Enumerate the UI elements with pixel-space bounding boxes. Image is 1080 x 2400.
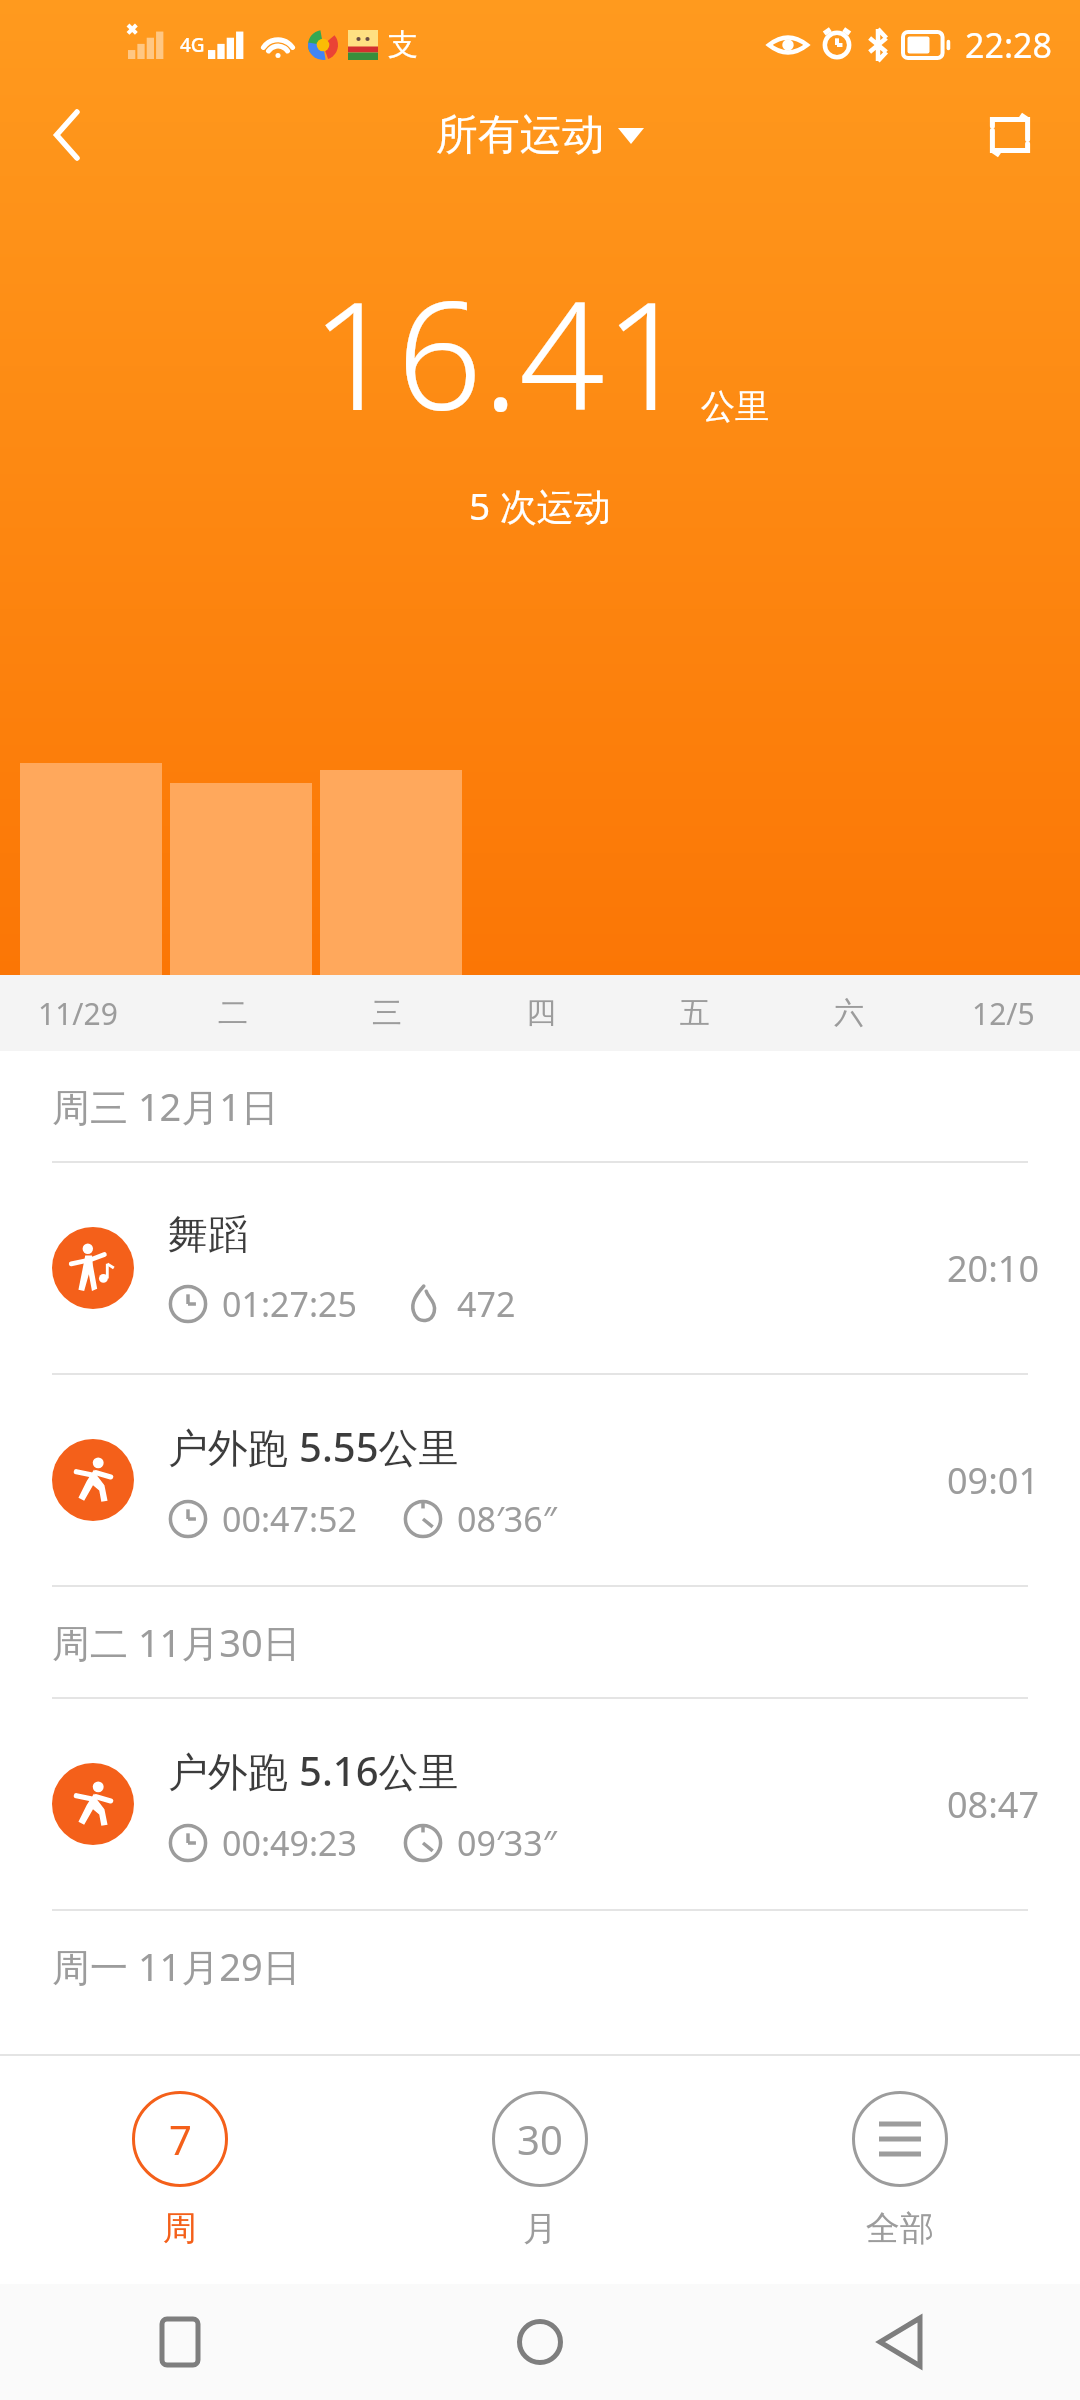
staticText: 01:27:25 — [222, 1281, 357, 1327]
button[interactable]: 户外跑 — [0, 1375, 1080, 1585]
staticText: 周二 11月30日 — [52, 1616, 301, 1668]
staticText: 全部 — [866, 2207, 934, 2250]
staticText: 09:01 — [947, 1456, 1040, 1505]
staticText: 5.16公里 — [299, 1743, 459, 1798]
staticText: 12/5 — [972, 993, 1035, 1034]
staticText: 7 — [169, 2112, 192, 2166]
button[interactable]: Back — [860, 2302, 940, 2382]
staticText: 周 — [163, 2207, 197, 2250]
staticText: 舞蹈 — [168, 1209, 248, 1259]
staticText: 月 — [523, 2207, 557, 2250]
staticText: 09′33″ — [457, 1820, 557, 1866]
staticText: 00:47:52 — [222, 1496, 357, 1542]
button[interactable]: 全部 — [720, 2056, 1080, 2284]
staticText: 二 — [218, 994, 248, 1032]
staticText: 4G — [180, 32, 205, 58]
staticText: 00:49:23 — [222, 1820, 357, 1866]
staticText: 户外跑 — [168, 1419, 299, 1474]
staticText: 472 — [457, 1281, 516, 1327]
staticText: 周三 12月1日 — [52, 1080, 280, 1132]
staticText: 5.55公里 — [299, 1419, 459, 1474]
staticText: 六 — [834, 994, 864, 1032]
staticText: 三 — [372, 994, 402, 1032]
staticText: 22:28 — [965, 22, 1052, 68]
button[interactable]: 7 — [0, 2056, 360, 2284]
button[interactable]: Sync — [966, 91, 1054, 179]
button[interactable]: Recents — [140, 2302, 220, 2382]
staticText: 5 次运动 — [469, 480, 611, 531]
button[interactable]: 舞蹈 — [0, 1163, 1080, 1373]
staticText: 五 — [680, 994, 710, 1032]
staticText: 所有运动 — [436, 109, 604, 162]
staticText: 户外跑 — [168, 1743, 299, 1798]
staticText: 支 — [388, 26, 418, 64]
staticText: 公里 — [701, 385, 769, 428]
button[interactable]: 所有运动 — [424, 103, 656, 168]
staticText: 08′36″ — [457, 1496, 557, 1542]
staticText: 11/29 — [38, 993, 118, 1034]
staticText: 20:10 — [947, 1244, 1040, 1293]
button[interactable]: Home — [500, 2302, 580, 2382]
button[interactable]: 户外跑 — [0, 1699, 1080, 1909]
staticText: 30 — [517, 2112, 563, 2166]
staticText: 四 — [526, 994, 556, 1032]
staticText: 16.41 — [311, 250, 691, 454]
staticText: 周一 11月29日 — [52, 1940, 301, 1992]
staticText: 08:47 — [947, 1780, 1040, 1829]
button[interactable]: 30 — [360, 2056, 720, 2284]
button[interactable]: Back — [24, 91, 112, 179]
